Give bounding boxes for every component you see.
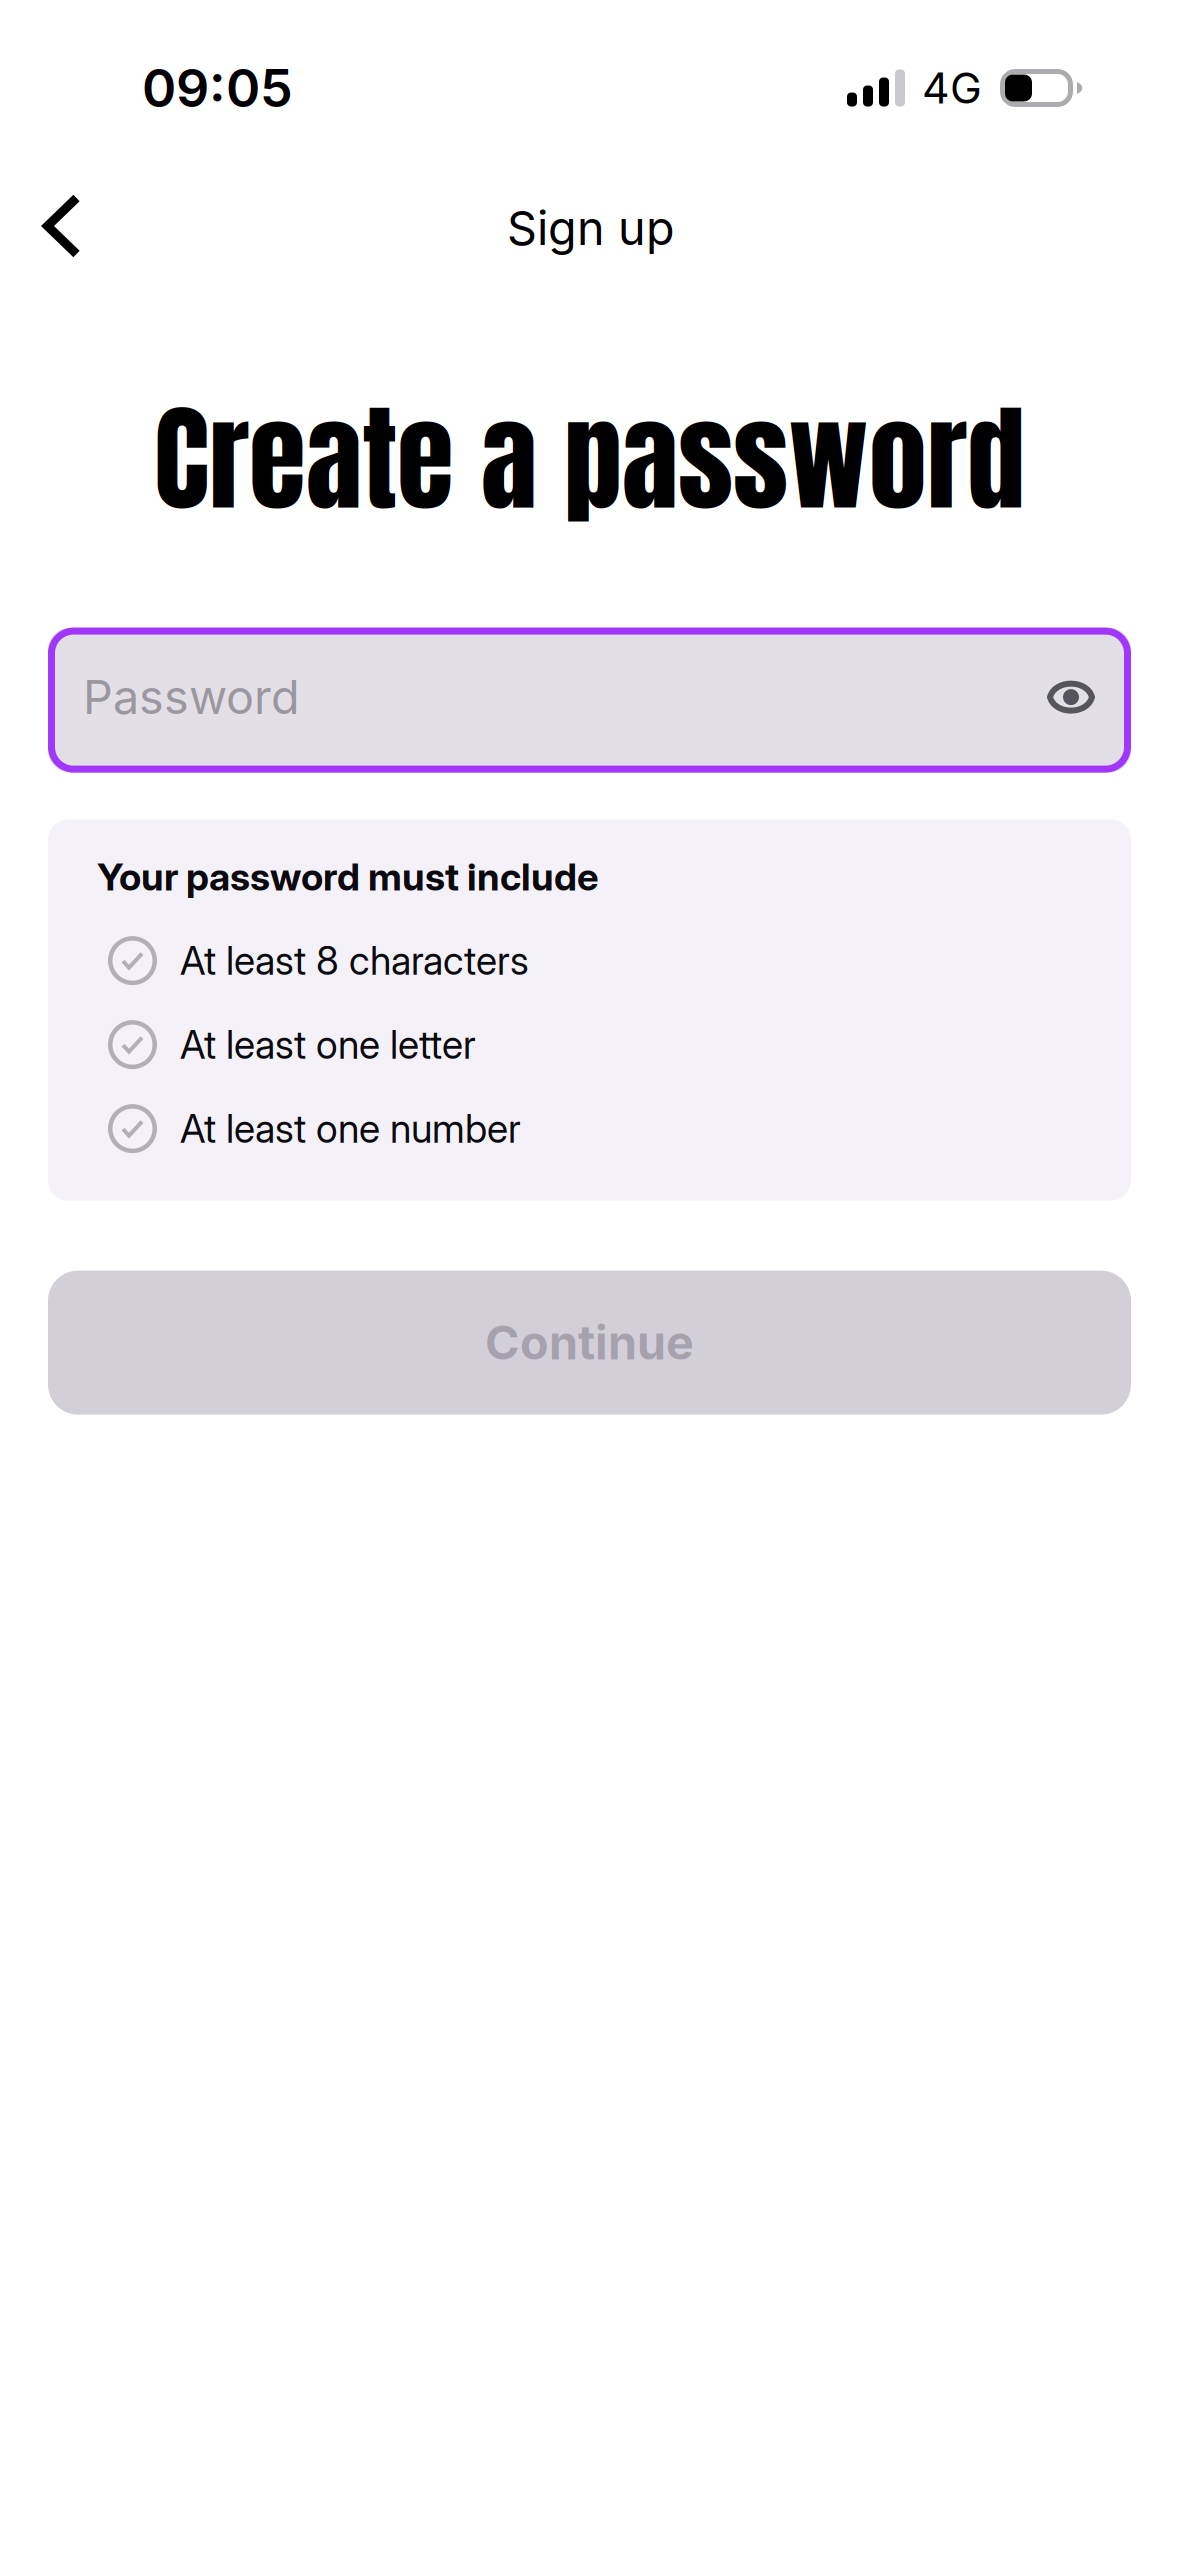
staticText: 4G: [922, 62, 982, 114]
staticText: Continue: [485, 1314, 694, 1371]
staticText: Password: [83, 669, 300, 725]
button[interactable]: Back: [7, 171, 117, 281]
button[interactable]: Password: [48, 628, 1131, 773]
staticText: Sign up: [507, 200, 675, 256]
staticText: At least one letter: [180, 1021, 476, 1068]
button[interactable]: Continue: [48, 1271, 1131, 1415]
staticText: At least one number: [180, 1105, 521, 1152]
button[interactable]: Show password: [1033, 658, 1117, 742]
staticText: At least 8 characters: [180, 937, 529, 984]
staticText: Your password must include: [97, 854, 599, 900]
staticText: Create a password: [154, 371, 1025, 546]
staticText: 09:05: [142, 56, 293, 119]
